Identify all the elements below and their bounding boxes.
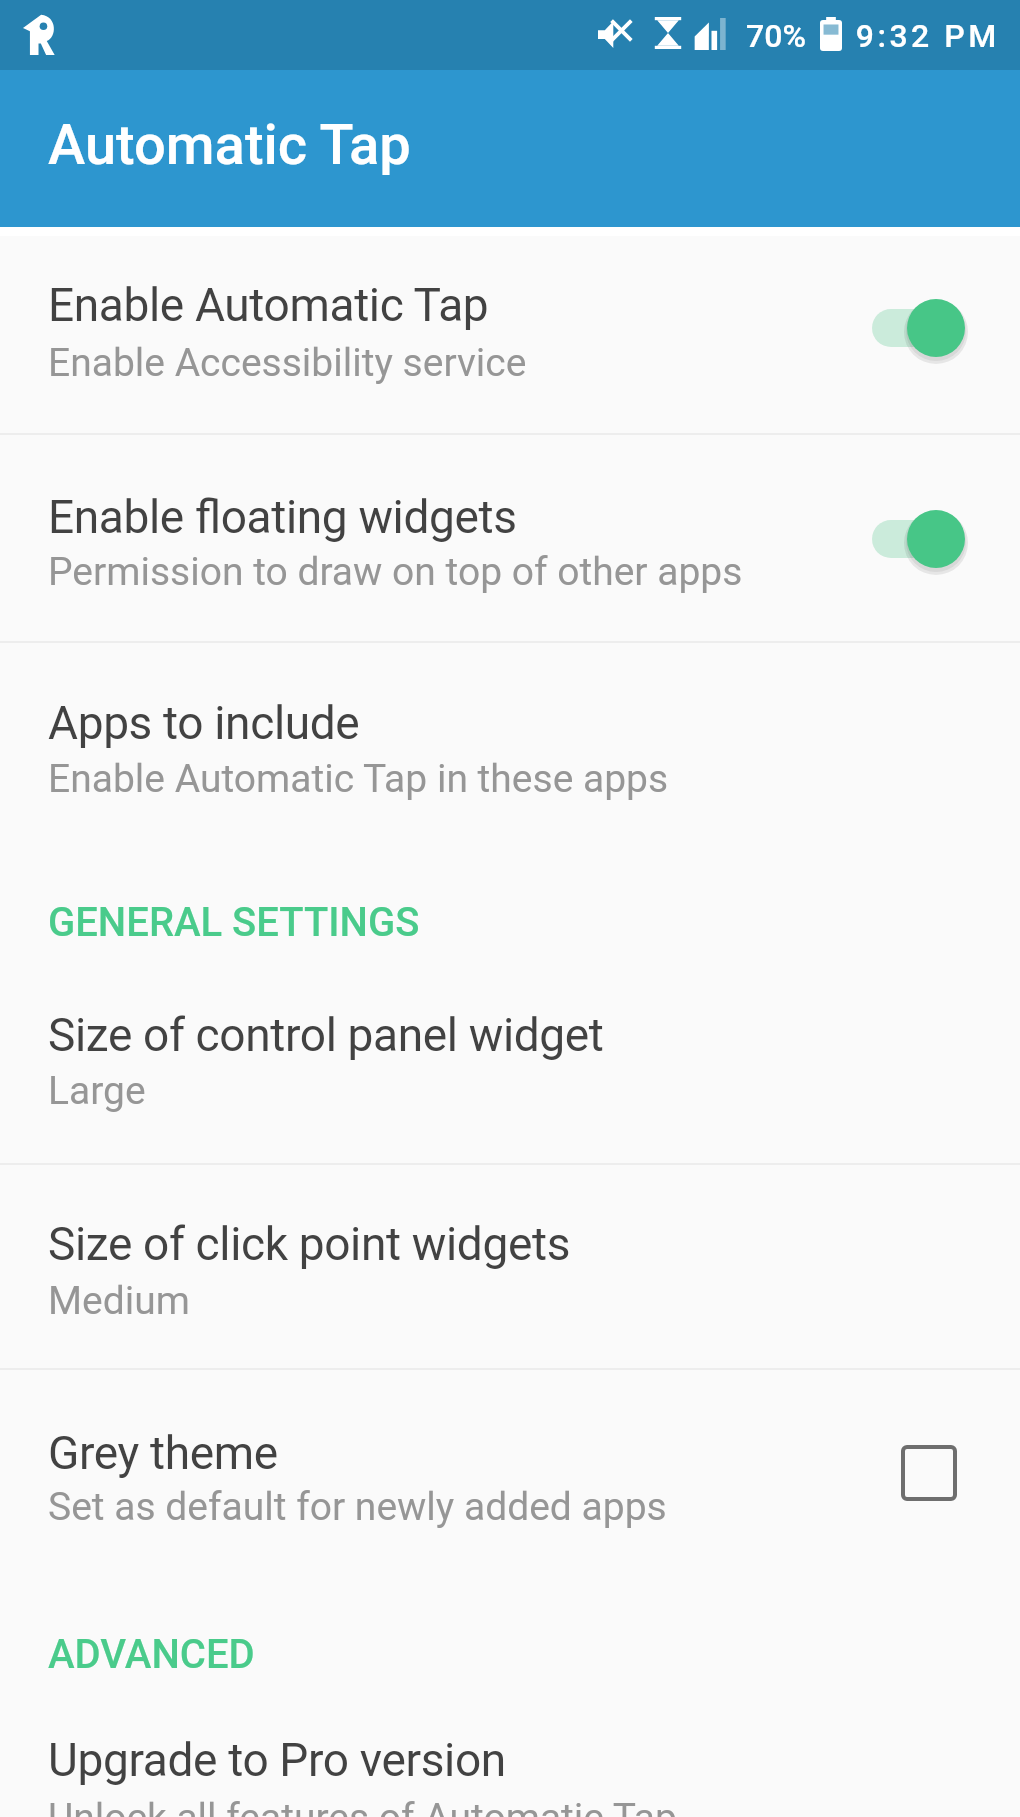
staticText: Upgrade to Pro version — [48, 1733, 506, 1787]
button[interactable]: Toggle setting — [862, 499, 982, 579]
staticText: Grey theme — [48, 1426, 278, 1480]
other: Busy — [653, 17, 683, 49]
staticText: Enable Automatic Tap — [48, 278, 489, 332]
staticText: 9:32 PM — [854, 17, 998, 55]
button[interactable]: Apps to include — [0, 643, 1020, 850]
staticText: Large — [48, 1068, 146, 1114]
other: Sound muted — [598, 18, 632, 50]
staticText: ADVANCED — [48, 1631, 255, 1678]
button[interactable]: Grey theme — [0, 1370, 1020, 1578]
button[interactable]: Enable Automatic Tap — [0, 227, 1020, 433]
staticText: GENERAL SETTINGS — [48, 899, 420, 946]
staticText: Apps to include — [48, 696, 360, 750]
button[interactable]: Grey theme checkbox — [889, 1433, 969, 1513]
button[interactable]: Enable floating widgets — [0, 435, 1020, 641]
other: Automatic Tap icon — [23, 14, 56, 55]
staticText: Permission to draw on top of other apps — [48, 549, 743, 595]
button[interactable]: Size of click point widgets — [0, 1165, 1020, 1368]
staticText: Unlock all features of Automatic Tap — [48, 1795, 677, 1817]
staticText: Medium — [48, 1278, 190, 1324]
staticText: Size of click point widgets — [48, 1217, 571, 1271]
other: Mobile signal — [694, 18, 727, 50]
staticText: 70% — [746, 17, 806, 55]
staticText: Enable Accessibility service — [48, 340, 527, 386]
staticText: Enable floating widgets — [48, 490, 517, 544]
other: Battery — [820, 17, 842, 51]
button[interactable]: Toggle setting — [862, 288, 982, 368]
staticText: Enable Automatic Tap in these apps — [48, 756, 669, 802]
button[interactable]: Size of control panel widget — [0, 960, 1020, 1163]
staticText: Automatic Tap — [48, 112, 411, 178]
staticText: Size of control panel widget — [48, 1008, 604, 1062]
button[interactable]: Upgrade to Pro version — [0, 1690, 1020, 1817]
staticText: Set as default for newly added apps — [48, 1484, 667, 1530]
